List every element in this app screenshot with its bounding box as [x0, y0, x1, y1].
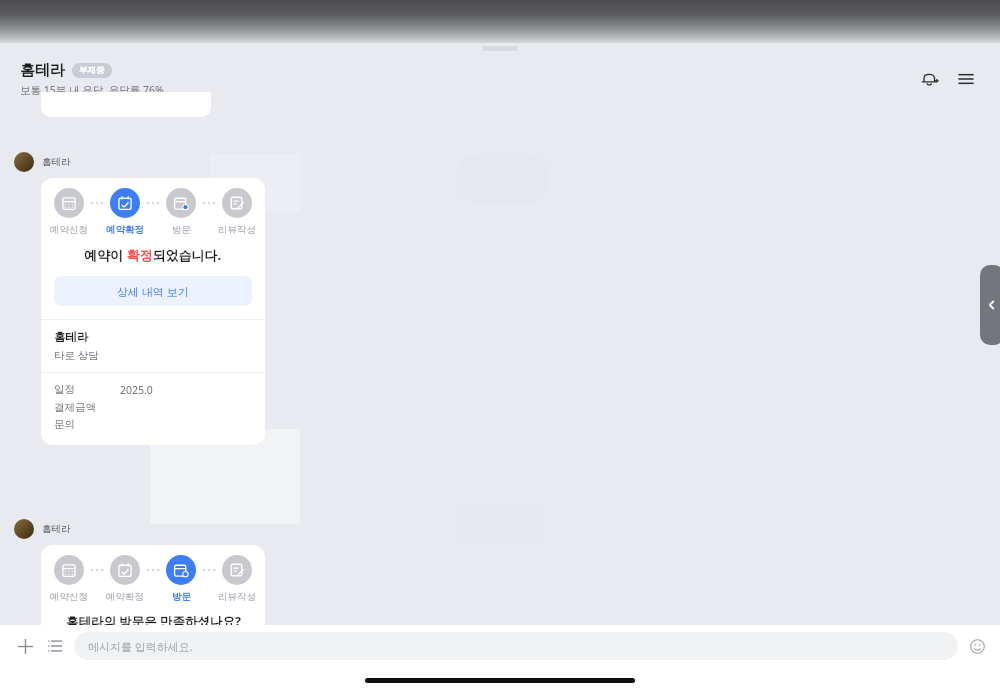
- button[interactable]: 추가: [10, 631, 40, 661]
- staticText: 일정: [54, 383, 75, 396]
- staticText: 홈테라: [42, 523, 71, 535]
- staticText: 부재중: [79, 65, 105, 76]
- staticText: 예약이 확정되었습니다.: [84, 246, 222, 264]
- button[interactable]: 이모티콘: [964, 633, 990, 659]
- staticText: 예약신청: [50, 224, 88, 236]
- staticText: 결제금액: [54, 401, 96, 414]
- staticText: 방문: [172, 591, 191, 603]
- staticText: 메시지를 입력하세요.: [88, 639, 193, 654]
- button[interactable]: 메시지를 입력하세요.: [74, 632, 958, 660]
- staticText: 홈테라: [54, 330, 89, 344]
- staticText: 타로 상담: [54, 348, 99, 362]
- staticText: 보통 15분 내 응답, 응답률 76%: [20, 83, 164, 97]
- button[interactable]: 메뉴: [948, 61, 984, 97]
- staticText: 홈테라: [20, 61, 65, 80]
- staticText: 방문: [172, 224, 191, 236]
- staticText: 문의: [54, 418, 75, 431]
- button[interactable]: 예약신청: [41, 178, 265, 445]
- button[interactable]: 예약신청: [41, 545, 265, 686]
- staticText: 예약신청: [50, 591, 88, 603]
- staticText: 리뷰작성: [218, 224, 256, 236]
- button[interactable]: 알림 추가: [912, 61, 948, 97]
- staticText: 2025.0: [120, 383, 153, 397]
- button[interactable]: [54, 644, 252, 674]
- staticText: 리뷰작성: [218, 591, 256, 603]
- button[interactable]: 목록: [40, 631, 70, 661]
- button[interactable]: 패널 열기: [980, 265, 1000, 345]
- staticText: 홈테라의 방문은 만족하셨나요?: [66, 613, 241, 630]
- staticText: 상세 내역 보기: [117, 284, 189, 299]
- staticText: 예약확정: [106, 224, 144, 236]
- staticText: 예약확정: [106, 591, 144, 603]
- button[interactable]: 상세 내역 보기: [54, 276, 252, 306]
- staticText: 홈테라: [42, 156, 71, 168]
